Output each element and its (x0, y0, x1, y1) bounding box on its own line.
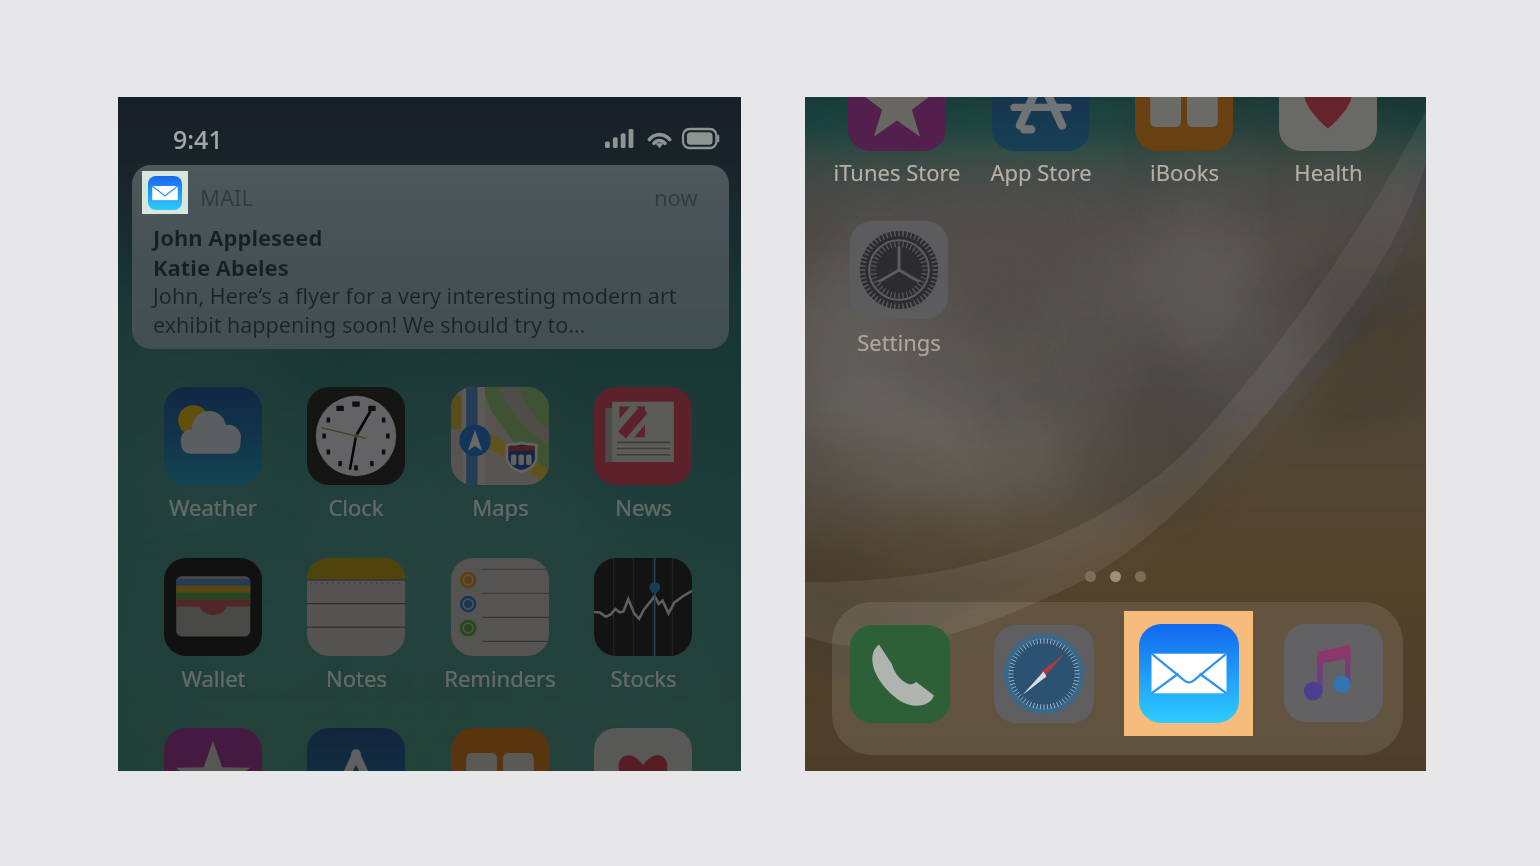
button[interactable]: Health (1259, 97, 1397, 193)
button[interactable]: iBooks (1115, 97, 1253, 193)
button[interactable]: News (574, 387, 712, 527)
button[interactable]: App Store (972, 97, 1110, 193)
staticText: Wallet (181, 663, 246, 693)
staticText: Clock (328, 492, 384, 522)
button[interactable]: Wallet (144, 558, 282, 698)
staticText: Health (1294, 157, 1363, 187)
button[interactable]: Weather (144, 387, 282, 527)
button[interactable] (287, 728, 425, 771)
button[interactable]: Reminders (431, 558, 569, 698)
button[interactable]: Notes (287, 558, 425, 698)
staticText: iBooks (1150, 157, 1219, 187)
button[interactable]: Stocks (574, 558, 712, 698)
staticText: Weather (169, 492, 257, 522)
button[interactable] (144, 728, 282, 771)
button[interactable]: Safari (994, 625, 1094, 723)
button[interactable]: iTunes Store (828, 97, 966, 193)
staticText: iTunes Store (833, 157, 961, 187)
button[interactable]: Settings (830, 221, 968, 361)
staticText: App Store (990, 157, 1092, 187)
staticText: News (615, 492, 672, 522)
button[interactable]: Clock (287, 387, 425, 527)
staticText: Katie Abeles (153, 252, 289, 282)
staticText: Maps (472, 492, 529, 522)
button[interactable]: Maps (431, 387, 569, 527)
button[interactable] (574, 728, 712, 771)
staticText: now (654, 182, 698, 212)
staticText: Settings (857, 327, 941, 357)
staticText: John, Here‘s a flyer for a very interest… (153, 281, 677, 310)
button[interactable] (431, 728, 569, 771)
staticText: Stocks (610, 663, 677, 693)
staticText: Reminders (444, 663, 556, 693)
staticText: Notes (326, 663, 387, 693)
button[interactable]: Music (1284, 624, 1383, 722)
button[interactable]: Mail (1139, 624, 1239, 723)
staticText: 9:41 (173, 122, 223, 156)
staticText: John Appleseed (153, 222, 323, 252)
staticText: MAIL (200, 182, 253, 212)
button[interactable]: MAIL (132, 165, 729, 349)
button[interactable]: Phone (850, 625, 950, 723)
staticText: exhibit happening soon! We should try to… (153, 310, 586, 339)
